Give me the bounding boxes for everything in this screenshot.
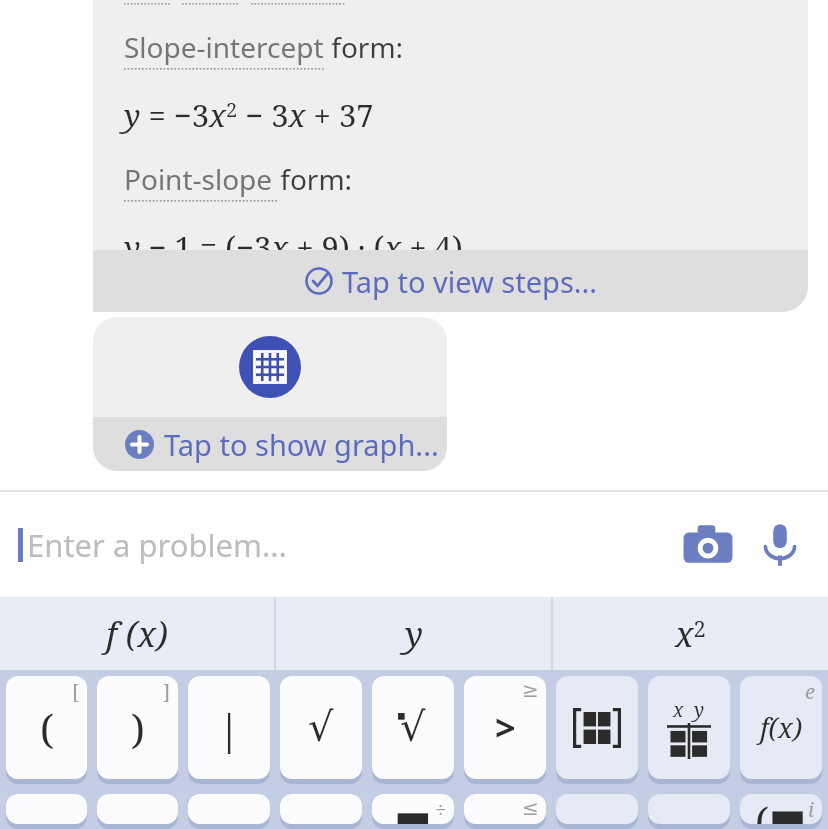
staticText: y − 1 = (−3x + 9) · (x + 4) (124, 226, 463, 250)
button[interactable]: (■ (740, 794, 822, 824)
staticText: Tap to view steps... (342, 262, 598, 301)
button[interactable]: key (464, 794, 546, 824)
staticText: x (673, 697, 684, 723)
staticText: e (805, 678, 815, 705)
button[interactable]: √ (280, 676, 362, 779)
staticText: > (495, 703, 516, 752)
button[interactable]: key (6, 794, 87, 824)
button[interactable]: f(x) (740, 676, 822, 779)
staticText: i (808, 796, 815, 823)
staticText: ▬ (394, 794, 432, 824)
staticText: (■ (755, 794, 807, 824)
button[interactable]: Slope-intercept (93, 0, 808, 312)
button[interactable]: ∛sq (372, 676, 454, 779)
staticText: ≤ (522, 796, 539, 819)
button[interactable]: matrix (556, 676, 638, 779)
staticText: f(x) (760, 709, 803, 746)
button[interactable]: key (97, 794, 178, 824)
staticText: Point-slope (124, 160, 273, 198)
other: Graph (239, 336, 301, 398)
staticText: | (218, 701, 241, 755)
staticText: √ (400, 704, 426, 751)
button[interactable]: Tap to show graph... (93, 417, 447, 471)
staticText: Enter a problem... (27, 524, 287, 566)
button[interactable]: Scan with camera (672, 509, 744, 581)
button[interactable]: > (464, 676, 546, 779)
button[interactable]: Tap to view steps... (93, 250, 808, 312)
staticText: y (694, 697, 705, 723)
staticText: x2 (675, 611, 706, 657)
button[interactable]: Enter a problem... (27, 524, 672, 566)
staticText: ] (163, 678, 171, 705)
button[interactable]: key (648, 794, 730, 824)
button[interactable]: f (x) (0, 597, 274, 670)
staticText: y = −3x2 − 3x + 37 (124, 94, 374, 136)
staticText: ÷ (435, 796, 447, 823)
staticText: f (x) (106, 611, 168, 657)
staticText: [ (72, 678, 80, 705)
staticText: y (405, 611, 423, 657)
staticText: Slope-intercept (124, 28, 324, 66)
button[interactable]: | (188, 676, 270, 779)
staticText: ≥ (522, 678, 539, 701)
button[interactable]: Graph (93, 317, 447, 471)
staticText: √ (308, 704, 334, 751)
button[interactable]: ( (6, 676, 87, 779)
staticText: Tap to show graph... (164, 425, 439, 464)
button[interactable]: key (188, 794, 270, 824)
staticText: form: (324, 28, 404, 66)
button[interactable]: ▬ (372, 794, 454, 824)
button[interactable]: Voice input (744, 509, 816, 581)
staticText: ) (131, 701, 145, 755)
button[interactable]: x2 (553, 597, 828, 670)
button[interactable]: table (648, 676, 730, 779)
staticText: ( (40, 701, 54, 755)
staticText: form: (273, 160, 353, 198)
button[interactable]: y (276, 597, 551, 670)
button[interactable]: ) (97, 676, 178, 779)
button[interactable]: key (280, 794, 362, 824)
button[interactable]: key (556, 794, 638, 824)
